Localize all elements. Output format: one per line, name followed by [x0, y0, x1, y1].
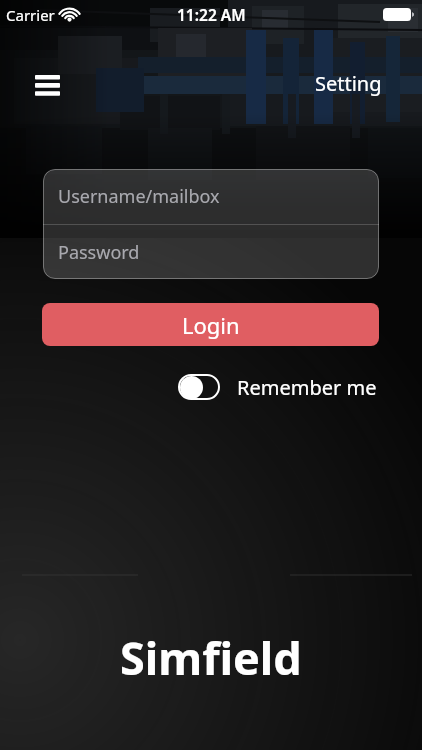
- button[interactable]: Password: [43, 225, 379, 279]
- button[interactable]: Remember me: [178, 373, 377, 401]
- staticText: Login: [182, 310, 240, 340]
- staticText: Username/mailbox: [58, 184, 220, 209]
- staticText: Simfield: [120, 627, 302, 688]
- staticText: Remember me: [237, 374, 377, 401]
- button[interactable]: [25, 63, 69, 107]
- button[interactable]: Setting: [309, 64, 388, 103]
- staticText: Password: [58, 240, 140, 265]
- button[interactable]: Username/mailbox: [43, 169, 379, 224]
- staticText: Carrier: [6, 5, 55, 25]
- staticText: 11:22 AM: [177, 4, 246, 25]
- button[interactable]: Login: [42, 303, 379, 346]
- staticText: Setting: [315, 70, 382, 97]
